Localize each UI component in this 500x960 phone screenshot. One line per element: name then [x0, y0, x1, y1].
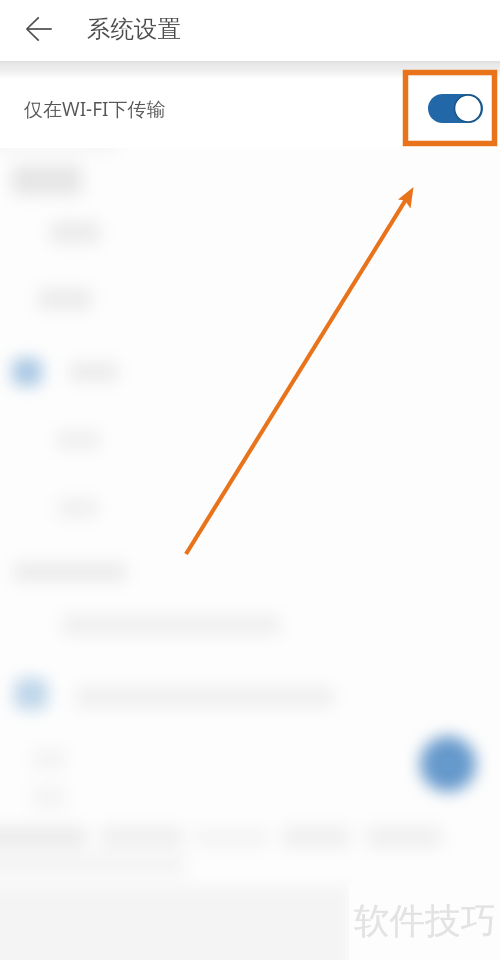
button[interactable]: Wi-Fi only transfer switch: [428, 94, 483, 123]
staticText: 系统设置: [87, 14, 181, 44]
staticText: 软件技巧: [354, 899, 496, 944]
staticText: 仅在WI-FI下传输: [24, 96, 166, 122]
button[interactable]: 仅在WI-FI下传输: [0, 78, 500, 148]
button[interactable]: Back: [14, 4, 64, 54]
